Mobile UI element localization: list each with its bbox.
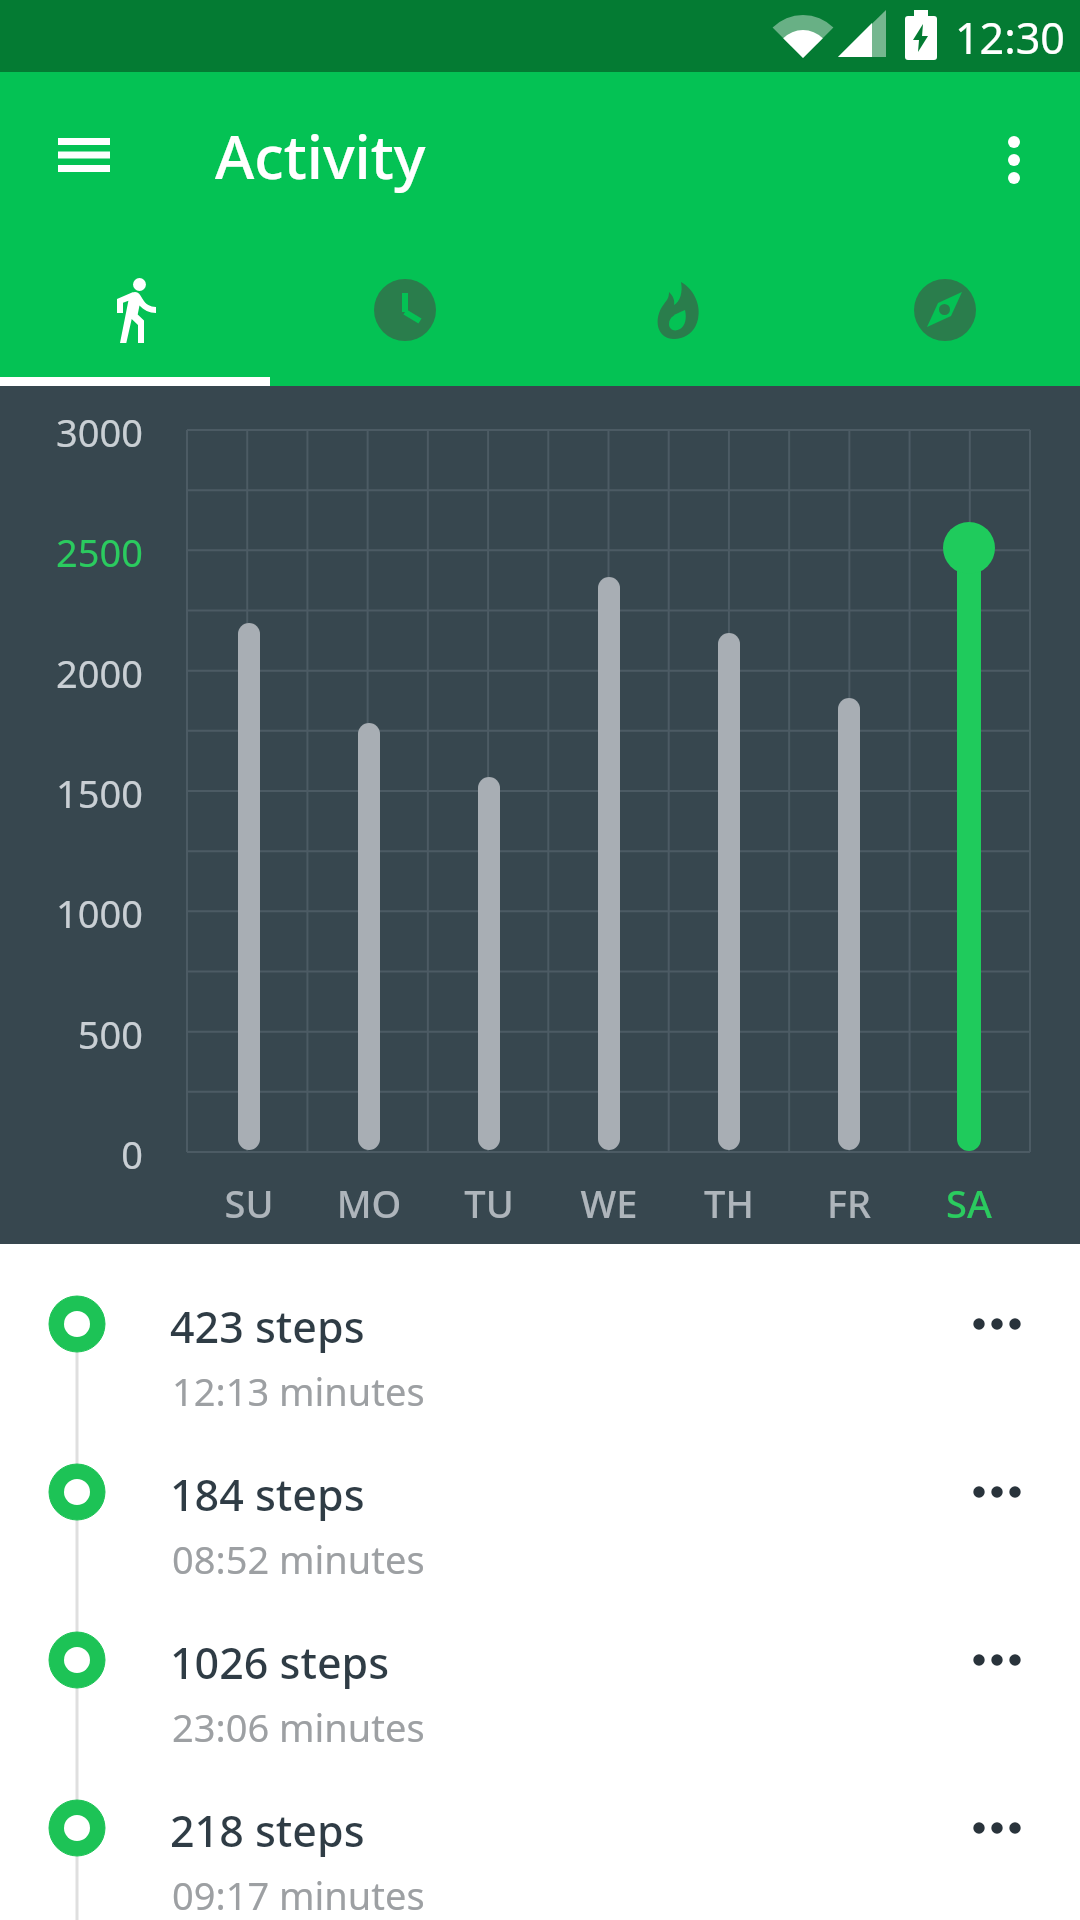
staticText: WE <box>549 1177 669 1229</box>
button[interactable]: 1026 steps <box>0 1576 1080 1744</box>
staticText: 3000 <box>0 406 143 458</box>
button[interactable] <box>947 1630 1047 1690</box>
staticText: Activity <box>215 115 426 197</box>
staticText: 0 <box>0 1128 143 1180</box>
button[interactable] <box>0 248 270 386</box>
staticText: 12:13 minutes <box>172 1365 425 1417</box>
button[interactable] <box>40 131 128 179</box>
staticText: 23:06 minutes <box>172 1701 425 1753</box>
button[interactable]: 184 steps <box>0 1408 1080 1576</box>
staticText: TH <box>669 1177 789 1229</box>
button[interactable]: 423 steps <box>0 1240 1080 1408</box>
staticText: MO <box>309 1177 429 1229</box>
staticText: 218 steps <box>170 1801 365 1860</box>
staticText: SU <box>189 1177 309 1229</box>
staticText: 1026 steps <box>170 1633 390 1692</box>
staticText: 2500 <box>0 526 143 578</box>
button[interactable] <box>540 248 810 386</box>
staticText: 184 steps <box>170 1465 365 1524</box>
staticText: 1500 <box>0 767 143 819</box>
staticText: FR <box>789 1177 909 1229</box>
staticText: 423 steps <box>170 1297 365 1356</box>
button[interactable] <box>947 1798 1047 1858</box>
button[interactable] <box>810 248 1080 386</box>
button[interactable] <box>984 118 1044 206</box>
staticText: TU <box>429 1177 549 1229</box>
button[interactable] <box>270 248 540 386</box>
staticText: SA <box>909 1177 1029 1229</box>
button[interactable]: 218 steps <box>0 1744 1080 1912</box>
staticText: 12:30 <box>955 8 1065 67</box>
button[interactable] <box>947 1462 1047 1522</box>
staticText: 08:52 minutes <box>172 1533 425 1585</box>
button[interactable] <box>947 1294 1047 1354</box>
staticText: 1000 <box>0 887 143 939</box>
staticText: 09:17 minutes <box>172 1869 425 1920</box>
staticText: 500 <box>0 1008 143 1060</box>
staticText: 2000 <box>0 647 143 699</box>
